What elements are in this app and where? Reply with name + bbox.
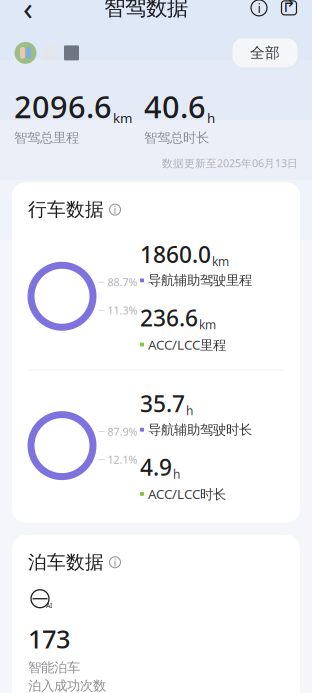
staticText: 12.1% bbox=[107, 453, 137, 467]
staticText: 泊入成功次数 bbox=[28, 678, 106, 693]
staticText: km bbox=[212, 253, 229, 269]
staticText: i bbox=[257, 0, 260, 17]
staticText: 智能泊车 bbox=[28, 659, 80, 676]
staticText: 2096.6 bbox=[14, 86, 112, 127]
button[interactable]: 关于泊车数据 bbox=[109, 556, 121, 568]
staticText: 88.7% bbox=[107, 275, 137, 289]
staticText: 11.3% bbox=[107, 303, 137, 317]
staticText: 236.6 bbox=[140, 303, 198, 333]
staticText: ACC/LCC里程 bbox=[148, 336, 226, 353]
staticText: i bbox=[113, 202, 116, 217]
staticText: 数据更新至2025年06月13日 bbox=[162, 156, 298, 170]
staticText: 87.9% bbox=[107, 424, 137, 439]
staticText: h bbox=[186, 403, 193, 418]
staticText: i bbox=[113, 555, 116, 569]
staticText: 173 bbox=[28, 622, 70, 655]
staticText: 40.6 bbox=[144, 86, 206, 127]
staticText: 1860.0 bbox=[140, 239, 211, 269]
staticText: km bbox=[199, 317, 216, 333]
button[interactable]: 关于行车数据 bbox=[109, 204, 121, 216]
button[interactable]: 说明 bbox=[244, 0, 274, 26]
staticText: 智驾总时长 bbox=[144, 130, 209, 146]
staticText: 泊车数据 bbox=[28, 551, 104, 574]
staticText: AI bbox=[46, 601, 52, 610]
staticText: 智驾总里程 bbox=[14, 130, 79, 146]
staticText: h bbox=[207, 109, 215, 127]
staticText: 全部 bbox=[250, 44, 280, 62]
staticText: ‹ bbox=[23, 0, 33, 29]
staticText: ACC/LCC时长 bbox=[148, 485, 226, 503]
staticText: 导航辅助驾驶时长 bbox=[148, 421, 252, 438]
staticText: 行车数据 bbox=[28, 198, 104, 221]
staticText: 4.9 bbox=[140, 452, 172, 482]
button[interactable]: 全部 bbox=[232, 38, 298, 68]
button[interactable]: 返回 bbox=[8, 0, 48, 28]
staticText: 导航辅助驾驶里程 bbox=[148, 272, 252, 289]
staticText: 35.7 bbox=[140, 388, 185, 418]
staticText: km bbox=[113, 109, 132, 127]
staticText: h bbox=[173, 466, 180, 482]
staticText: ↱ bbox=[281, 0, 296, 16]
staticText: 智驾数据 bbox=[104, 0, 188, 21]
button[interactable]: 分享 bbox=[274, 0, 304, 26]
